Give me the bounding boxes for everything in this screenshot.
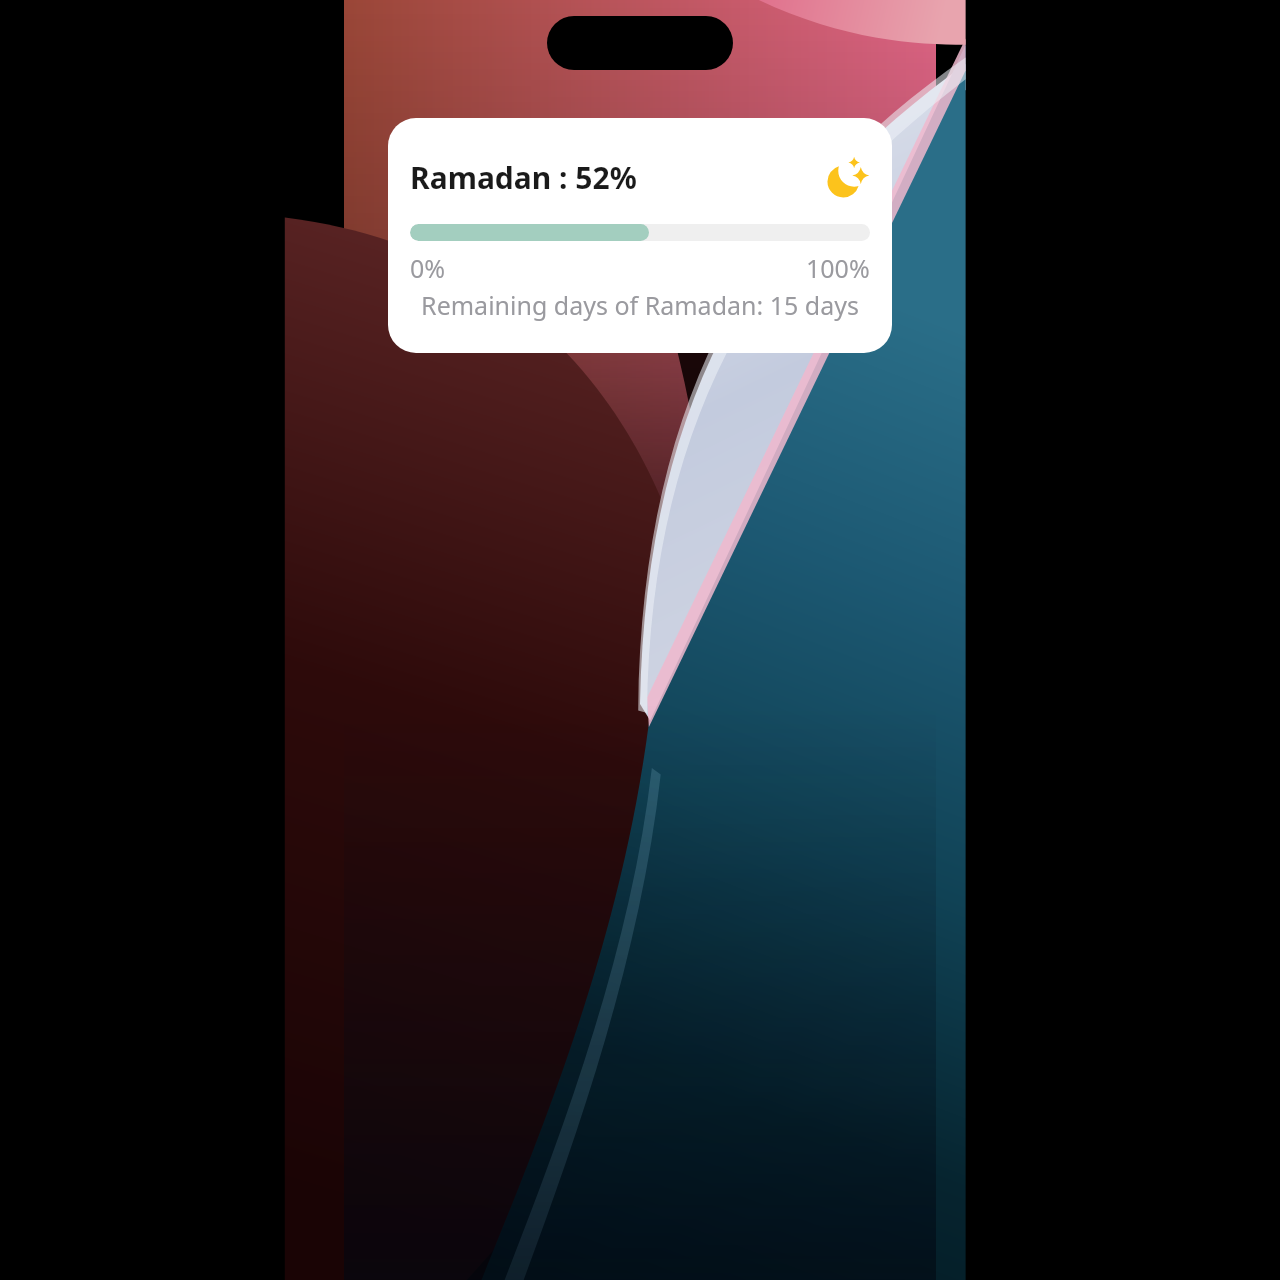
staticText: Remaining days of Ramadan: 15 days [410,288,870,322]
other: Night mode [824,154,870,200]
staticText: Ramadan : 52% [410,157,637,198]
staticText: 0% [410,251,446,285]
button[interactable]: Ramadan : 52% [388,118,892,353]
staticText: 100% [806,251,870,285]
